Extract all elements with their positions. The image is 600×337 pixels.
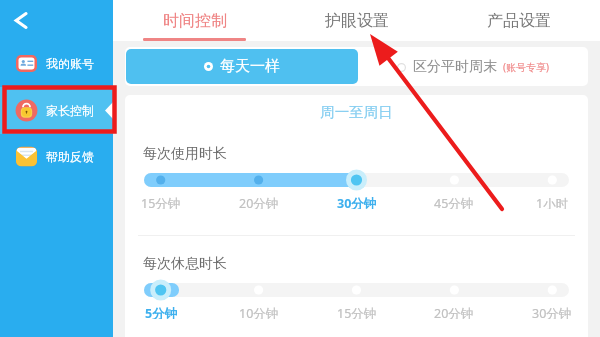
staticText: 每天一样 [220,57,280,76]
staticText: 区分平时周末 [413,58,497,76]
staticText: 20分钟 [239,195,279,209]
staticText: 15分钟 [337,305,377,319]
staticText: 10分钟 [239,305,279,319]
button[interactable]: 区分平时周末 [358,47,588,86]
staticText: 每次使用时长 [143,145,227,163]
staticText: 45分钟 [434,195,474,209]
button[interactable]: Back [0,0,42,40]
staticText: 时间控制 [163,11,227,31]
button[interactable]: 时间控制 [113,0,276,41]
staticText: 家长控制 [46,103,94,118]
staticText: 我的账号 [46,56,94,71]
button[interactable]: 护眼设置 [276,0,438,41]
staticText: 1小时 [536,195,569,209]
staticText: 30分钟 [337,195,377,209]
staticText: 30分钟 [532,305,572,319]
staticText: 15分钟 [141,195,181,209]
staticText: 产品设置 [487,11,551,31]
staticText: (账号专享) [503,60,549,74]
staticText: 帮助反馈 [46,149,94,164]
staticText: 5分钟 [145,305,178,319]
button[interactable] [144,279,569,301]
staticText: 护眼设置 [325,11,389,31]
button[interactable]: 帮助反馈 [0,133,113,180]
button[interactable]: 我的账号 [0,40,113,87]
staticText: 20分钟 [434,305,474,319]
staticText: 周一至周日 [125,103,588,121]
button[interactable]: 每天一样 [126,49,358,84]
button[interactable] [144,169,569,191]
button[interactable]: 家长控制 [0,87,113,134]
staticText: 每次休息时长 [143,255,227,273]
button[interactable]: 产品设置 [438,0,600,41]
